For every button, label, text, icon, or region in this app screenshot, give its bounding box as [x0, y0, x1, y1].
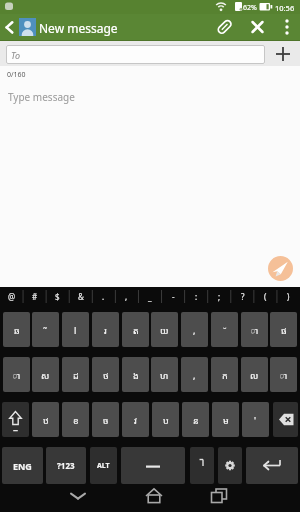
- button[interactable]: $: [46, 287, 69, 306]
- button[interactable]: [2, 402, 29, 437]
- staticText: -: [172, 291, 175, 302]
- button[interactable]: [58, 484, 98, 512]
- button[interactable]: វ: [122, 402, 149, 437]
- staticText: ថ: [103, 369, 109, 381]
- staticText: វ: [134, 414, 137, 426]
- button[interactable]: l: [62, 312, 89, 347]
- button[interactable]: [121, 447, 185, 484]
- button[interactable]: ម: [212, 402, 239, 437]
- button[interactable]: #: [23, 287, 46, 306]
- staticText: #: [32, 291, 38, 302]
- button[interactable]: ALT: [90, 447, 117, 484]
- button[interactable]: ស: [32, 357, 59, 392]
- staticText: ˘: [223, 324, 227, 336]
- button[interactable]: ?: [231, 287, 254, 306]
- button[interactable]: (: [254, 287, 277, 306]
- button[interactable]: ថ: [92, 357, 119, 392]
- button[interactable]: [201, 484, 241, 512]
- staticText: ?: [241, 291, 245, 302]
- button[interactable]: [246, 447, 298, 484]
- button[interactable]: យ: [151, 312, 178, 347]
- button[interactable]: _: [138, 287, 161, 306]
- button[interactable]: ENG: [2, 447, 43, 484]
- button[interactable]: ខ: [62, 402, 89, 437]
- button[interactable]: ង: [122, 357, 149, 392]
- button[interactable]: [212, 14, 240, 41]
- staticText: ,: [193, 324, 196, 336]
- button[interactable]: [278, 14, 300, 41]
- staticText: l: [74, 324, 77, 336]
- button[interactable]: ឋ: [32, 402, 59, 437]
- button[interactable]: @: [0, 287, 23, 306]
- button[interactable]: ': [242, 402, 269, 437]
- button[interactable]: ក: [211, 357, 238, 392]
- staticText: ច: [103, 414, 109, 426]
- button[interactable]: [190, 447, 214, 484]
- button[interactable]: ា: [270, 357, 297, 392]
- staticText: ន: [193, 414, 199, 426]
- button[interactable]: [269, 43, 297, 65]
- button[interactable]: ច: [92, 402, 119, 437]
- staticText: To: [11, 49, 20, 61]
- staticText: .: [102, 291, 105, 302]
- staticText: ): [287, 291, 290, 302]
- button[interactable]: To: [6, 45, 265, 64]
- button[interactable]: ា: [3, 357, 30, 392]
- button[interactable]: ˜: [32, 312, 59, 347]
- button[interactable]: [273, 402, 298, 437]
- staticText: ,: [193, 369, 196, 381]
- staticText: ឆ: [14, 324, 20, 336]
- staticText: 0/160: [7, 70, 26, 80]
- staticText: 10:56: [275, 3, 295, 13]
- button[interactable]: -: [162, 287, 185, 306]
- staticText: Type message: [8, 90, 75, 104]
- button[interactable]: [19, 18, 36, 36]
- button[interactable]: :: [185, 287, 208, 306]
- staticText: ?123: [57, 460, 75, 471]
- staticText: ˜: [43, 324, 48, 336]
- button[interactable]: [0, 80, 300, 287]
- staticText: 62%: [243, 3, 257, 13]
- staticText: ា: [250, 324, 259, 336]
- button[interactable]: [268, 256, 293, 281]
- button[interactable]: .: [92, 287, 115, 306]
- staticText: ល: [250, 369, 259, 381]
- staticText: ស: [41, 369, 50, 381]
- button[interactable]: ល: [241, 357, 268, 392]
- button[interactable]: ប: [152, 402, 179, 437]
- button[interactable]: ;: [208, 287, 231, 306]
- staticText: ក: [222, 369, 228, 381]
- button[interactable]: ): [277, 287, 300, 306]
- button[interactable]: ា: [241, 312, 268, 347]
- staticText: ENG: [13, 460, 32, 472]
- button[interactable]: ?123: [46, 447, 86, 484]
- staticText: (: [264, 291, 267, 302]
- button[interactable]: [218, 447, 242, 484]
- staticText: រ: [104, 324, 107, 336]
- button[interactable]: ,: [181, 312, 208, 347]
- button[interactable]: &: [69, 287, 92, 306]
- staticText: ALT: [97, 461, 110, 471]
- staticText: ា: [12, 369, 21, 381]
- button[interactable]: [134, 484, 174, 512]
- staticText: &: [78, 291, 84, 302]
- staticText: ម: [223, 414, 229, 426]
- button[interactable]: ត: [122, 312, 149, 347]
- button[interactable]: ឆ: [3, 312, 30, 347]
- button[interactable]: [246, 14, 274, 41]
- staticText: ,: [125, 291, 128, 302]
- button[interactable]: ,: [115, 287, 138, 306]
- staticText: ;: [218, 291, 221, 302]
- button[interactable]: [0, 14, 16, 41]
- staticText: ា: [279, 369, 288, 381]
- button[interactable]: ន: [182, 402, 209, 437]
- button[interactable]: រ: [92, 312, 119, 347]
- staticText: ផ: [281, 324, 287, 336]
- button[interactable]: ដ: [62, 357, 89, 392]
- button[interactable]: ហ: [151, 357, 178, 392]
- staticText: ប: [163, 414, 169, 426]
- button[interactable]: ,: [181, 357, 208, 392]
- button[interactable]: ˘: [211, 312, 238, 347]
- button[interactable]: ផ: [270, 312, 297, 347]
- staticText: New message: [39, 20, 118, 36]
